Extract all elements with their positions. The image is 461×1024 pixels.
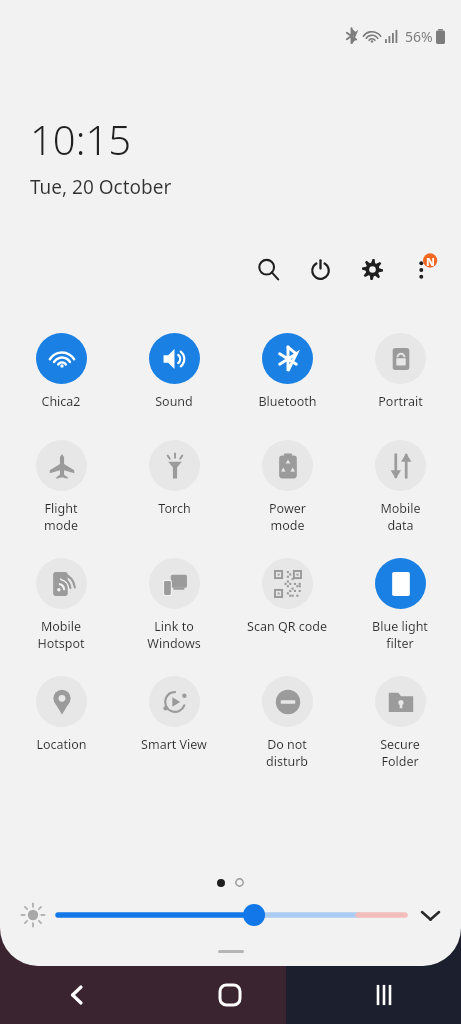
staticText: N <box>426 254 435 269</box>
staticText: Scan QR code <box>247 618 327 635</box>
button[interactable]: Smart View <box>122 674 226 753</box>
button[interactable]: Recents <box>307 966 461 1024</box>
button[interactable]: Mobile Hotspot <box>9 556 113 652</box>
staticText: Smart View <box>141 736 207 753</box>
button[interactable]: Blue light filter <box>348 556 452 652</box>
button[interactable] <box>58 902 405 928</box>
staticText: Tue, 20 October <box>30 174 172 200</box>
button[interactable]: More options <box>407 252 441 286</box>
staticText: Mobile Hotspot <box>37 618 85 652</box>
staticText: Flight mode <box>44 500 78 534</box>
button[interactable]: Do not disturb <box>235 674 339 770</box>
staticText: Location <box>36 736 87 753</box>
button[interactable]: Location <box>9 674 113 753</box>
staticText: Sound <box>155 393 193 410</box>
button[interactable]: Link to Windows <box>122 556 226 652</box>
button[interactable]: Bluetooth <box>235 331 339 410</box>
staticText: Blue light filter <box>372 618 428 652</box>
button[interactable]: Secure Folder <box>348 674 452 770</box>
other: Brightness <box>20 902 46 928</box>
button[interactable]: Power <box>305 254 335 284</box>
button[interactable]: Sound <box>122 331 226 410</box>
staticText: Torch <box>158 500 191 517</box>
button[interactable]: Back <box>0 966 153 1024</box>
button[interactable]: Settings <box>357 254 387 284</box>
button[interactable]: Search <box>253 254 283 284</box>
button[interactable]: Scan QR code <box>235 556 339 635</box>
button[interactable]: Mobile data <box>348 438 452 534</box>
staticText: Bluetooth <box>258 393 317 410</box>
button[interactable]: Chica2 <box>9 331 113 410</box>
staticText: Mobile data <box>380 500 421 534</box>
staticText: 10:15 <box>30 112 132 166</box>
button[interactable]: Torch <box>122 438 226 517</box>
staticText: Link to Windows <box>147 618 201 652</box>
button[interactable]: Portrait <box>348 331 452 410</box>
staticText: Do not disturb <box>266 736 308 770</box>
staticText: Power mode <box>269 500 306 534</box>
button[interactable]: Expand brightness <box>415 900 445 930</box>
button[interactable]: Home <box>153 966 307 1024</box>
button[interactable]: Flight mode <box>9 438 113 534</box>
staticText: 56% <box>405 27 433 46</box>
button[interactable]: Power mode <box>235 438 339 534</box>
staticText: Portrait <box>378 393 423 410</box>
staticText: Secure Folder <box>380 736 420 770</box>
staticText: Chica2 <box>41 393 81 410</box>
